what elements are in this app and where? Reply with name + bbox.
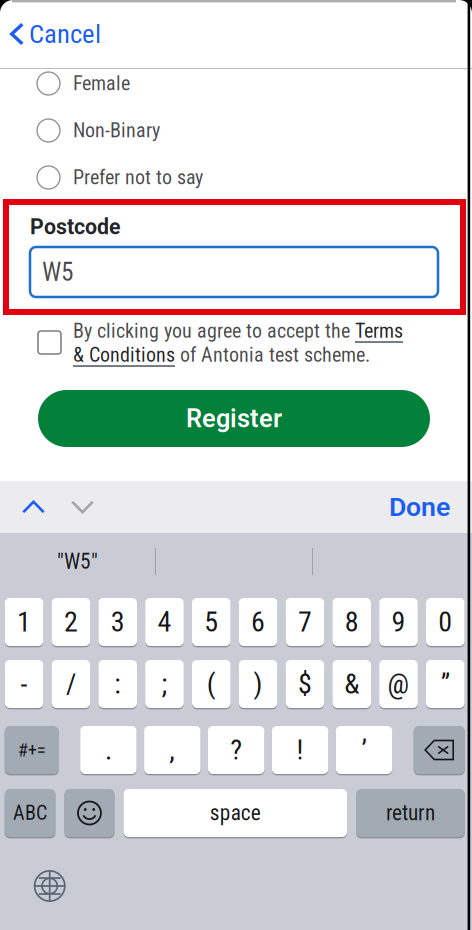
staticText: 1 [17,606,31,638]
button[interactable]: : [98,660,137,708]
staticText: Terms [355,319,403,343]
staticText: ” [441,668,450,700]
button[interactable]: ( [192,660,231,708]
staticText: ; [161,668,167,700]
button[interactable]: Next field [63,481,102,533]
button[interactable]: ABC [5,789,55,837]
staticText: By clicking you agree to accept the [73,319,355,343]
staticText: ABC [13,801,47,825]
staticText: 7 [298,606,312,638]
staticText: , [169,734,175,766]
button[interactable]: 5 [192,598,231,646]
button[interactable]: 7 [286,598,324,646]
button[interactable]: Delete [414,726,465,774]
button[interactable]: Register [38,390,430,447]
button[interactable]: space [123,789,347,837]
button[interactable]: , [144,726,200,774]
staticText: @ [387,668,409,700]
button[interactable]: Female [0,60,472,107]
staticText: Cancel [29,18,101,50]
button[interactable]: - [5,660,43,708]
staticText: Non-Binary [73,119,160,142]
button[interactable]: 6 [239,598,277,646]
button[interactable]: ! [272,726,328,774]
button[interactable]: . [80,726,137,774]
button[interactable]: Emoji [64,789,114,837]
button[interactable]: Prefer not to say [0,154,472,201]
staticText: ! [297,734,304,766]
button[interactable]: 2 [52,598,90,646]
button[interactable]: Terms [355,319,403,343]
button[interactable]: & Conditions [73,343,175,367]
staticText: ’ [361,734,366,766]
button[interactable]: Accept terms and conditions [38,319,61,362]
staticText: W5 [42,257,74,287]
button[interactable]: 4 [145,598,184,646]
button[interactable]: #+= [5,726,59,774]
button[interactable]: 0 [426,598,465,646]
staticText: Done [389,491,450,523]
staticText: 3 [111,606,125,638]
staticText: Prefer not to say [73,166,203,189]
staticText: return [386,800,435,825]
staticText: . [105,734,112,766]
staticText: of Antonia test scheme. [175,343,370,367]
button[interactable]: @ [379,660,418,708]
staticText: 2 [64,606,78,638]
staticText: - [21,668,28,700]
staticText: / [66,668,76,700]
button[interactable]: Cancel [0,3,115,65]
staticText: & Conditions [73,343,175,367]
staticText: Female [73,72,130,95]
staticText: 8 [345,606,359,638]
staticText: 4 [157,606,171,638]
button[interactable]: 9 [379,598,418,646]
button[interactable]: Done [389,481,472,533]
button[interactable]: Previous field [0,481,63,533]
button[interactable]: ; [145,660,184,708]
button[interactable]: 8 [332,598,371,646]
button[interactable]: & [332,660,371,708]
staticText: Postcode [30,214,121,239]
staticText: ? [230,734,242,766]
staticText: 6 [251,606,265,638]
staticText: ( [207,668,216,700]
staticText: $ [298,668,312,700]
button[interactable]: return [356,789,465,837]
button[interactable]: ” [426,660,465,708]
staticText: space [210,800,261,825]
button[interactable]: 1 [5,598,43,646]
button[interactable]: 3 [98,598,137,646]
staticText: 5 [204,606,218,638]
button[interactable]: ? [208,726,264,774]
button[interactable]: ’ [336,726,392,774]
staticText: 0 [438,606,452,638]
staticText: "W5" [57,549,98,574]
staticText: 9 [391,606,405,638]
staticText: : [114,668,121,700]
button[interactable]: / [52,660,90,708]
button[interactable]: Next keyboard [5,837,66,902]
staticText: & [344,668,359,700]
button[interactable]: Non-Binary [0,107,472,154]
staticText: #+= [18,739,46,761]
staticText: Register [186,404,282,433]
staticText: ) [254,668,263,700]
button[interactable]: ) [239,660,277,708]
button[interactable]: $ [286,660,324,708]
